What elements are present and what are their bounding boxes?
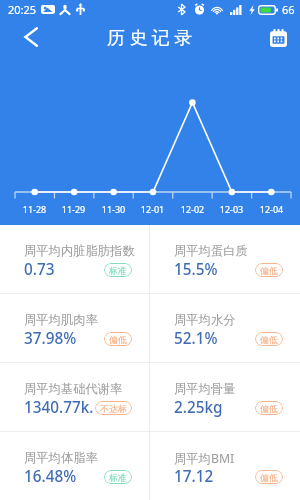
staticText: 周平均内脏脂肪指数 xyxy=(24,243,135,258)
staticText: 12-02 xyxy=(173,203,212,215)
staticText: 周平均BMI xyxy=(174,450,235,467)
button[interactable]: 周平均水分 xyxy=(150,294,300,362)
staticText: 偏低 xyxy=(260,334,278,345)
staticText: 偏低 xyxy=(109,334,127,345)
staticText: 11-29 xyxy=(54,203,93,215)
staticText: 标准 xyxy=(109,265,127,276)
staticText: 标准 xyxy=(109,472,127,483)
button[interactable]: 周平均蛋白质 xyxy=(150,225,300,293)
staticText: 周平均蛋白质 xyxy=(174,243,248,258)
staticText: 15.5% xyxy=(174,259,255,280)
button[interactable]: 周平均BMI xyxy=(150,432,300,500)
staticText: 12-01 xyxy=(133,203,172,215)
staticText: 0.73 xyxy=(24,259,104,280)
button[interactable]: Back xyxy=(13,18,49,54)
button[interactable]: Calendar xyxy=(260,18,296,54)
staticText: 历史记录 xyxy=(107,27,197,50)
staticText: 12-04 xyxy=(252,203,291,215)
staticText: 17.12 xyxy=(174,466,255,487)
staticText: 16.48% xyxy=(24,466,104,487)
staticText: 66 xyxy=(282,2,295,17)
staticText: 周平均体脂率 xyxy=(24,450,98,465)
staticText: 11-28 xyxy=(15,203,54,215)
staticText: 不达标 xyxy=(100,403,127,414)
staticText: 周平均水分 xyxy=(174,312,236,327)
button[interactable]: 周平均肌肉率 xyxy=(0,294,149,362)
staticText: 1340.77k.. xyxy=(24,397,95,418)
button[interactable]: 周平均骨量 xyxy=(150,363,300,431)
staticText: 偏低 xyxy=(260,472,278,483)
staticText: 周平均骨量 xyxy=(174,381,236,396)
button[interactable]: 周平均体脂率 xyxy=(0,432,149,500)
staticText: 偏低 xyxy=(260,403,278,414)
staticText: 2.25kg xyxy=(174,397,255,418)
staticText: 周平均基础代谢率 xyxy=(24,381,123,396)
staticText: 52.1% xyxy=(174,328,255,349)
staticText: 20:25 xyxy=(8,2,37,17)
staticText: 偏低 xyxy=(260,265,278,276)
staticText: 周平均肌肉率 xyxy=(24,312,98,327)
button[interactable]: 周平均内脏脂肪指数 xyxy=(0,225,149,293)
staticText: 37.98% xyxy=(24,328,104,349)
staticText: 12-03 xyxy=(212,203,251,215)
staticText: 11-30 xyxy=(94,203,133,215)
button[interactable]: 周平均基础代谢率 xyxy=(0,363,149,431)
